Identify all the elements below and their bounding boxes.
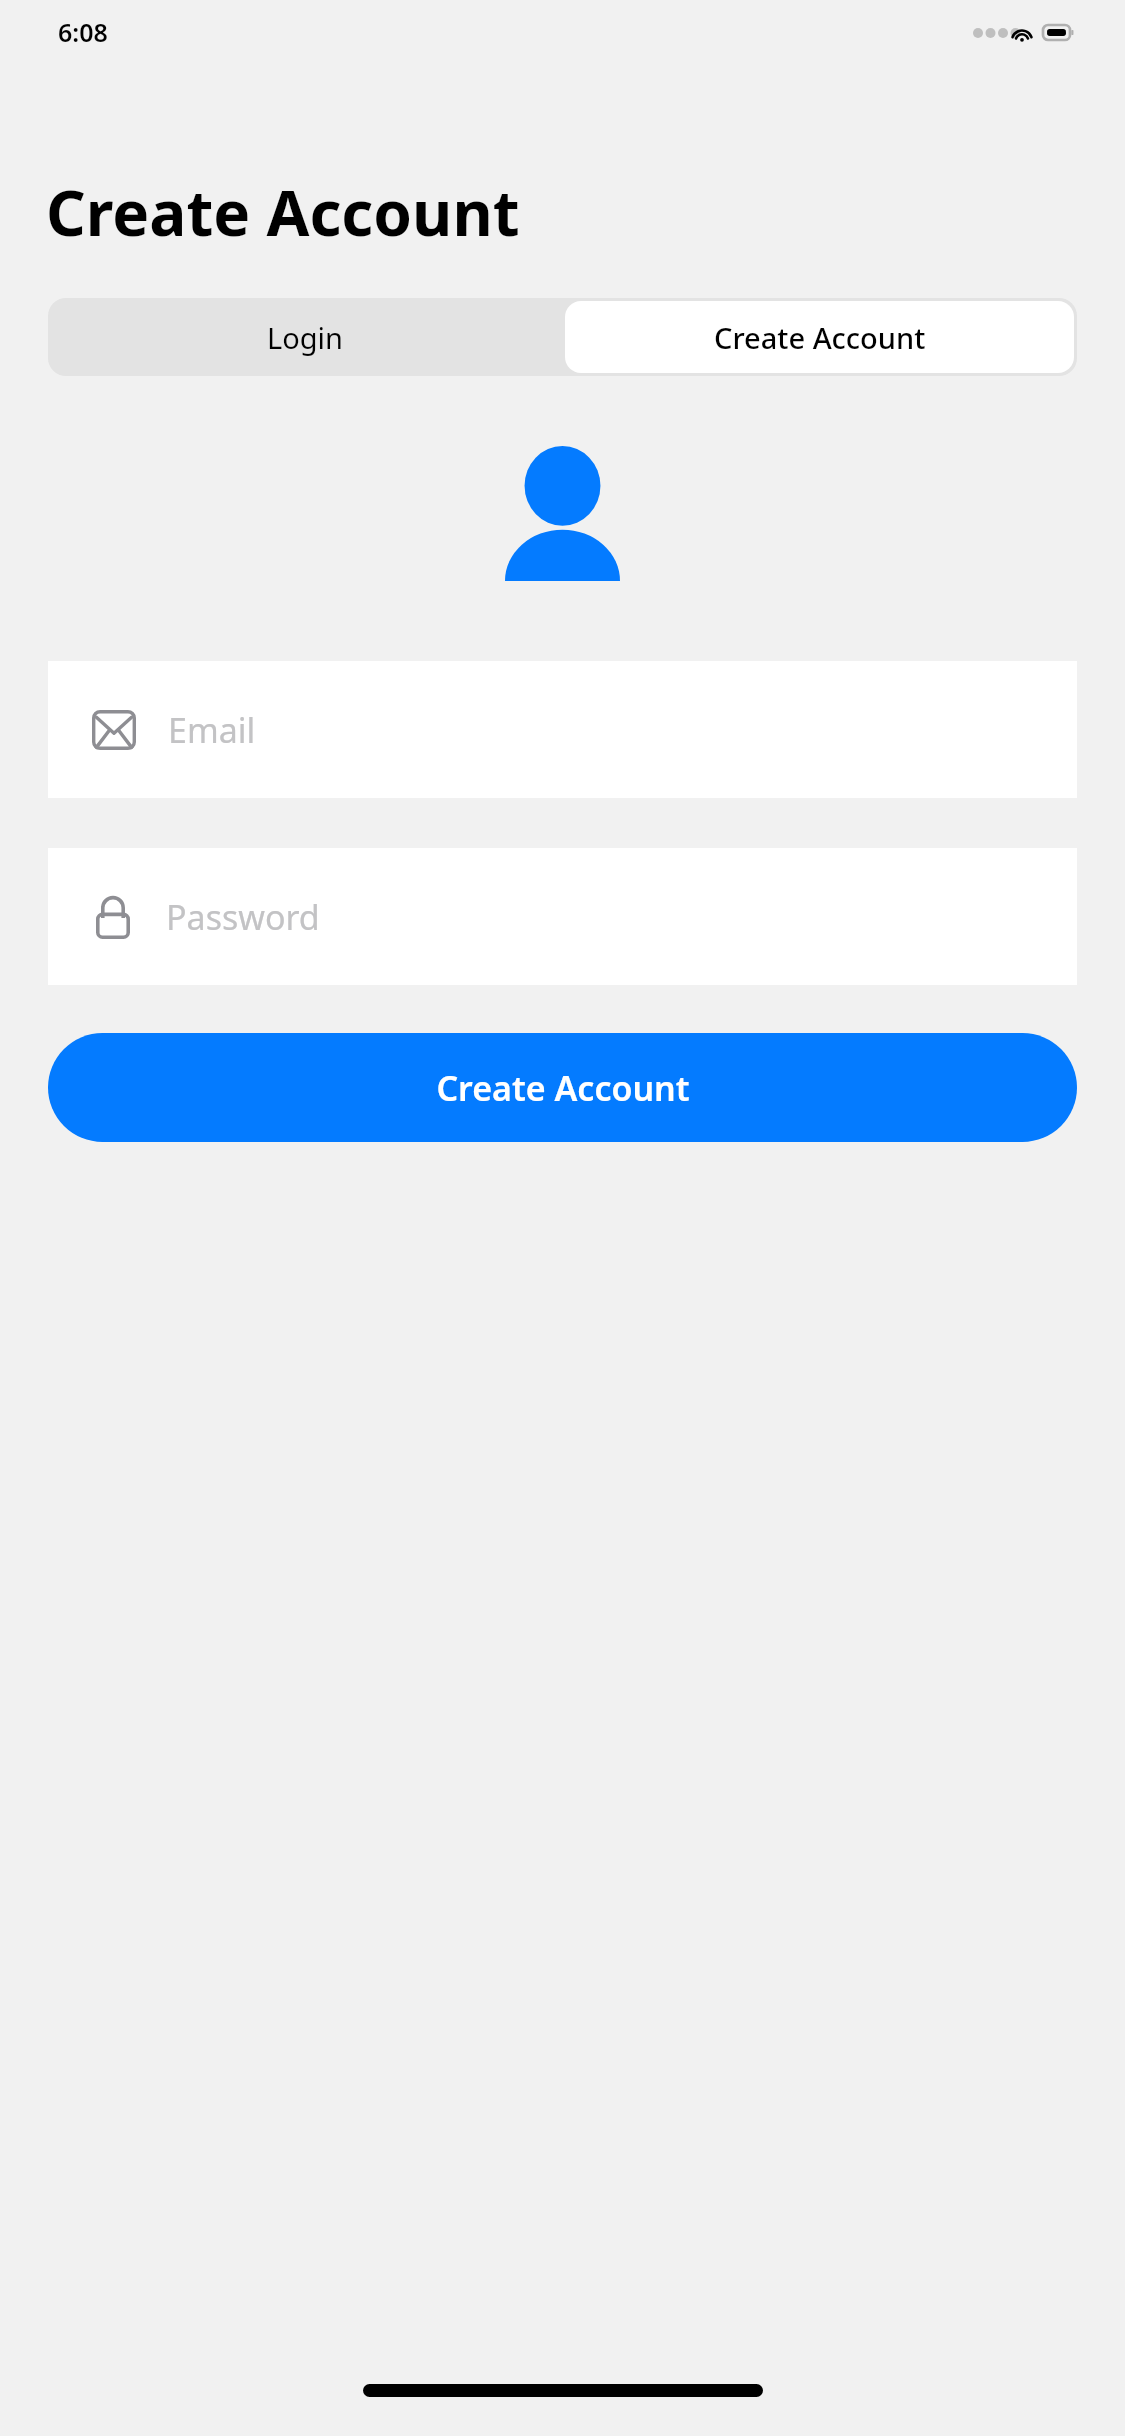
button[interactable]: Create Account bbox=[48, 1033, 1077, 1142]
staticText: Password bbox=[166, 894, 320, 940]
button[interactable]: Login bbox=[48, 298, 562, 376]
staticText: Create Account bbox=[714, 318, 926, 357]
other: Account avatar bbox=[505, 446, 620, 581]
staticText: Create Account bbox=[436, 1065, 690, 1111]
button[interactable]: Create Account bbox=[565, 301, 1074, 373]
staticText: Login bbox=[267, 318, 343, 357]
button[interactable]: Password bbox=[48, 848, 1077, 985]
button[interactable]: Email bbox=[48, 661, 1077, 798]
staticText: Create Account bbox=[46, 170, 520, 254]
staticText: Email bbox=[168, 707, 256, 753]
staticText: 6:08 bbox=[58, 15, 108, 49]
